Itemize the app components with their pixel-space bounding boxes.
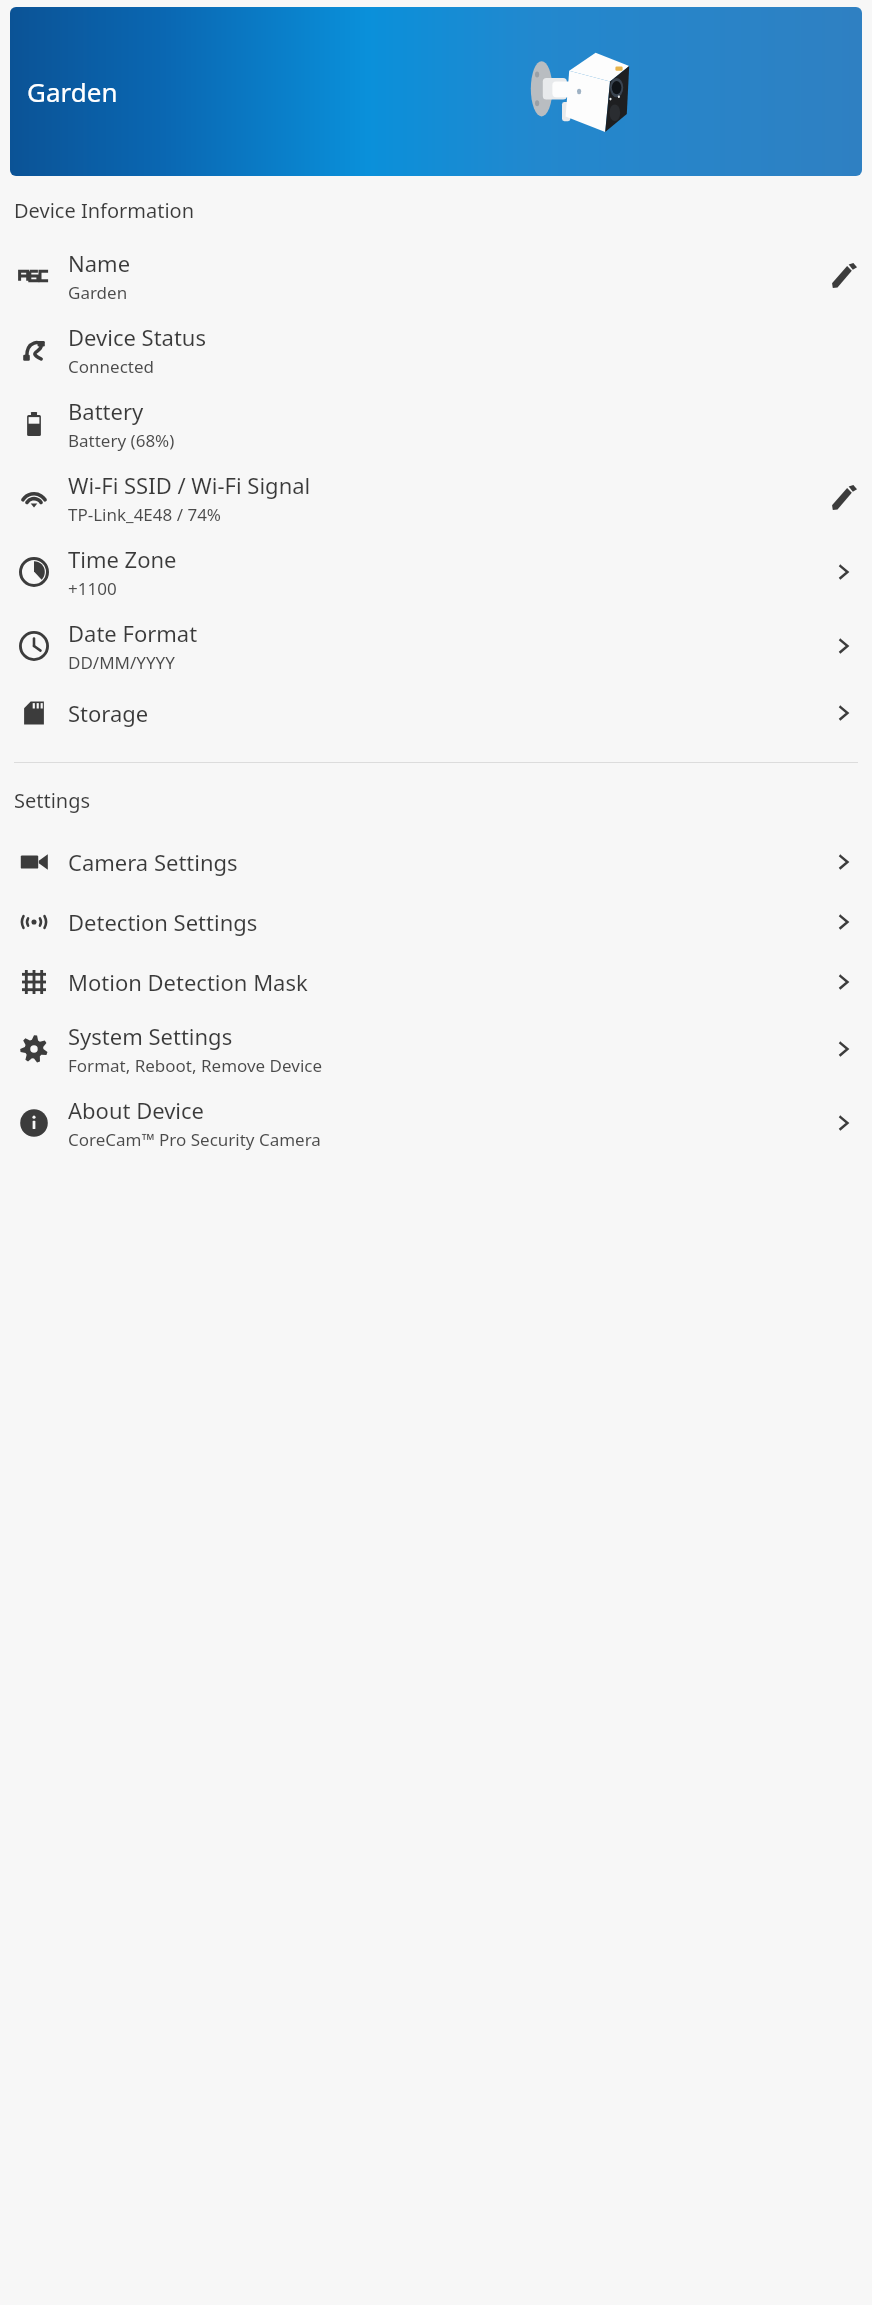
button[interactable]: Open [816,834,872,890]
button[interactable]: Time Zone [0,535,872,609]
button[interactable]: Open [816,618,872,674]
staticText: Device Information [14,197,195,224]
staticText: Date Format [68,618,198,648]
staticText: Format, Reboot, Remove Device [68,1054,323,1077]
button[interactable]: Open [816,1021,872,1077]
button[interactable]: Name [0,239,872,313]
button[interactable]: Date Format [0,609,872,683]
staticText: System Settings [68,1021,233,1051]
button[interactable]: Battery [0,387,872,461]
button[interactable]: Open [816,544,872,600]
button[interactable]: Detection Settings [0,892,872,952]
staticText: CoreCam™ Pro Security Camera [68,1128,321,1151]
button[interactable]: Edit [816,248,872,304]
staticText: DD/MM/YYYY [68,651,175,674]
staticText: Detection Settings [68,907,816,937]
button[interactable]: Garden [10,7,862,176]
button[interactable]: Open [816,1095,872,1151]
button[interactable]: Device Status [0,313,872,387]
button[interactable]: Camera Settings [0,832,872,892]
staticText: Motion Detection Mask [68,967,816,997]
button[interactable]: Open [816,954,872,1010]
staticText: Connected [68,355,154,378]
button[interactable]: Storage [0,683,872,743]
button[interactable]: System Settings [0,1012,872,1086]
staticText: Battery [68,396,144,426]
staticText: Battery (68%) [68,429,175,452]
button[interactable]: Edit [816,470,872,526]
staticText: +1100 [68,577,117,600]
button[interactable]: Motion Detection Mask [0,952,872,1012]
staticText: Garden [68,281,128,304]
staticText: Wi-Fi SSID / Wi-Fi Signal [68,470,311,500]
staticText: Name [68,248,131,278]
staticText: Time Zone [68,544,177,574]
staticText: About Device [68,1095,205,1125]
button[interactable]: About Device [0,1086,872,1160]
staticText: Storage [68,698,816,728]
staticText: Camera Settings [68,847,816,877]
button[interactable]: Wi-Fi SSID / Wi-Fi Signal [0,461,872,535]
button[interactable]: Open [816,685,872,741]
button[interactable]: Open [816,894,872,950]
staticText: Device Status [68,322,207,352]
staticText: Garden [27,74,118,109]
staticText: Settings [14,787,91,814]
staticText: TP-Link_4E48 / 74% [68,503,221,526]
